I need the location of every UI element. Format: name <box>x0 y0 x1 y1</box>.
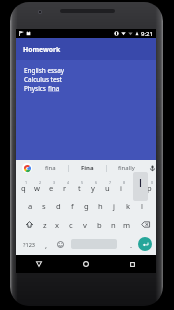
button[interactable]: o <box>128 176 142 196</box>
staticText: English essay <box>24 66 64 75</box>
button[interactable]: x <box>51 215 64 234</box>
staticText: g <box>84 201 89 211</box>
staticText: p <box>147 183 152 193</box>
button[interactable]: z <box>38 215 51 234</box>
staticText: s <box>42 201 46 211</box>
staticText: Calculus test <box>24 75 62 84</box>
button[interactable]: ?123 <box>19 234 39 255</box>
staticText: d <box>56 201 61 211</box>
button[interactable]: Google search <box>16 160 38 176</box>
button[interactable]: fina <box>38 160 62 176</box>
staticText: 4 <box>67 180 70 185</box>
staticText: 5 <box>81 180 84 185</box>
button[interactable]: p <box>142 176 156 196</box>
staticText: Homework <box>23 45 61 54</box>
staticText: f <box>71 201 74 211</box>
staticText: 2 <box>39 180 42 185</box>
button[interactable]: u <box>100 176 114 196</box>
button[interactable]: t <box>72 176 86 196</box>
button[interactable]: , <box>38 234 54 255</box>
button[interactable]: Voice input <box>144 160 160 176</box>
button[interactable]: Shift <box>16 215 38 234</box>
button[interactable]: Homework <box>16 38 156 60</box>
staticText: finally <box>118 164 135 172</box>
staticText: q <box>21 183 26 193</box>
staticText: k <box>126 201 131 211</box>
button[interactable]: Backspace <box>134 215 156 234</box>
staticText: l <box>139 175 142 190</box>
staticText: i <box>120 183 122 193</box>
staticText: Fina <box>81 164 94 172</box>
staticText: n <box>111 220 116 230</box>
button[interactable]: e <box>44 176 58 196</box>
staticText: l <box>141 201 143 211</box>
staticText: h <box>98 201 103 211</box>
button[interactable]: a <box>23 196 37 215</box>
button[interactable]: Back <box>16 255 62 273</box>
button[interactable]: c <box>64 215 78 234</box>
button[interactable]: r <box>58 176 72 196</box>
staticText: 9 <box>137 180 140 185</box>
staticText: Physics <box>24 84 48 93</box>
button[interactable]: m <box>120 215 134 234</box>
button[interactable]: d <box>51 196 65 215</box>
staticText: 1 <box>25 180 28 185</box>
button[interactable]: w <box>30 176 44 196</box>
button[interactable]: s <box>37 196 51 215</box>
button[interactable]: n <box>106 215 120 234</box>
staticText: , <box>45 240 48 250</box>
staticText: ?123 <box>23 241 36 249</box>
button[interactable]: Fina <box>75 160 99 176</box>
staticText: 8 <box>123 180 126 185</box>
staticText: a <box>28 201 33 211</box>
button[interactable]: v <box>78 215 92 234</box>
staticText: m <box>123 220 131 230</box>
button[interactable]: j <box>107 196 121 215</box>
button[interactable]: . <box>123 234 139 255</box>
button[interactable]: g <box>79 196 93 215</box>
button[interactable]: b <box>92 215 106 234</box>
staticText: v <box>83 220 87 230</box>
button[interactable]: l <box>135 196 149 215</box>
staticText: 9:21 <box>141 30 153 38</box>
staticText: fina <box>48 84 60 93</box>
button[interactable]: f <box>65 196 79 215</box>
staticText: u <box>105 183 110 193</box>
button[interactable]: q <box>16 176 30 196</box>
staticText: c <box>69 220 73 230</box>
staticText: w <box>34 183 40 193</box>
staticText: t <box>78 183 81 193</box>
button[interactable]: k <box>121 196 135 215</box>
button[interactable]: Enter <box>138 237 152 251</box>
staticText: fina <box>45 164 56 172</box>
staticText: b <box>97 220 102 230</box>
button[interactable]: Recent apps <box>109 255 156 273</box>
staticText: . <box>130 240 133 250</box>
staticText: z <box>43 220 47 230</box>
staticText: 7 <box>109 180 112 185</box>
button[interactable]: y <box>86 176 100 196</box>
staticText: y <box>91 183 95 193</box>
staticText: x <box>55 220 60 230</box>
button[interactable]: h <box>93 196 107 215</box>
staticText: r <box>63 183 67 193</box>
staticText: 3 <box>53 180 56 185</box>
button[interactable]: finally <box>113 160 139 176</box>
button[interactable]: Home <box>62 255 109 273</box>
button[interactable]: Emoji <box>52 234 68 255</box>
staticText: 6 <box>95 180 98 185</box>
button[interactable]: i <box>114 176 128 196</box>
staticText: 0 <box>151 180 154 185</box>
staticText: j <box>113 201 115 211</box>
staticText: e <box>49 183 54 193</box>
